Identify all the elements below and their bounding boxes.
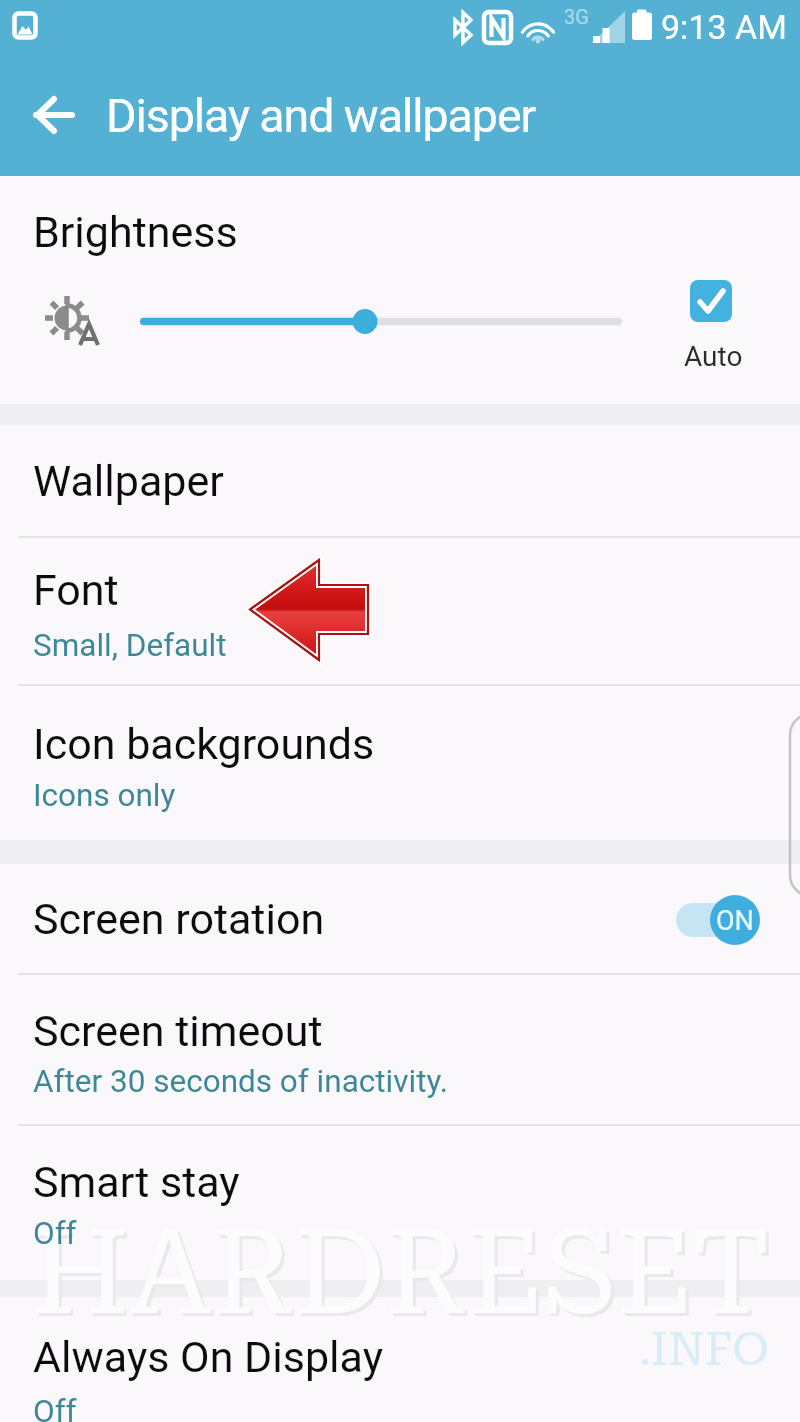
staticText: HARDRESET [34, 1207, 774, 1345]
staticText: HARDRESET [31, 1204, 771, 1342]
staticText: Screen rotation [33, 894, 325, 944]
staticText: Smart stay [33, 1157, 240, 1207]
staticText: After 30 seconds of inactivity. [33, 1063, 449, 1100]
staticText: Off [33, 1393, 77, 1422]
button[interactable]: Back [14, 80, 86, 152]
button[interactable]: Auto [665, 272, 757, 378]
staticText: .INFO [639, 1322, 769, 1376]
staticText: Brightness [33, 207, 238, 257]
staticText: Icons only [33, 777, 176, 814]
staticText: Display and wallpaper [106, 89, 536, 143]
staticText: Icon backgrounds [33, 719, 375, 769]
button[interactable]: Screen rotation [0, 864, 800, 973]
staticText: Screen timeout [33, 1006, 323, 1056]
button[interactable]: Screen timeout [0, 973, 800, 1124]
staticText: 9:13 AM [661, 7, 787, 47]
staticText: Font [33, 565, 119, 615]
staticText: 3G [564, 5, 589, 28]
staticText: Wallpaper [33, 456, 224, 506]
button[interactable]: Font [0, 536, 800, 684]
staticText: Small, Default [33, 627, 227, 664]
button[interactable]: Always On Display [0, 1297, 800, 1422]
button[interactable]: Wallpaper [0, 425, 800, 536]
staticText: Always On Display [33, 1332, 383, 1382]
staticText: Auto [684, 340, 743, 373]
staticText: ON [716, 905, 754, 937]
button[interactable]: Smart stay [0, 1124, 800, 1280]
button[interactable]: Icon backgrounds [0, 684, 800, 840]
staticText: Off [33, 1215, 77, 1252]
